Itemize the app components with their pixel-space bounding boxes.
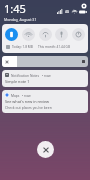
button[interactable]: Settings — [80, 2, 87, 9]
staticText: See what's new in review — [5, 99, 50, 104]
button[interactable]: Maps — [2, 90, 88, 113]
staticText: Simple note 1 — [5, 79, 30, 84]
staticText: Maps — [11, 93, 20, 97]
staticText: 4G — [65, 10, 70, 14]
staticText: Monday, August 31 — [4, 17, 37, 22]
button[interactable]: Brightness — [2, 56, 88, 67]
staticText: • now — [22, 93, 31, 97]
button[interactable]: Quick setting 2 — [39, 28, 52, 41]
button[interactable]: Clear all notifications — [37, 141, 54, 158]
button[interactable]: Quick setting 0 — [5, 28, 18, 41]
staticText: Notification Notes — [11, 73, 40, 77]
button[interactable]: Quick setting 4 — [72, 28, 85, 41]
staticText: • now — [42, 73, 51, 77]
staticText: Today: 1.8 MB — [12, 45, 33, 49]
button[interactable]: Notification Notes — [2, 70, 88, 87]
button[interactable]: Quick setting 3 — [55, 28, 68, 41]
staticText: 1:45 — [4, 1, 26, 16]
button[interactable]: Quick setting 1 — [22, 28, 35, 41]
staticText: Check out places you've been — [5, 105, 52, 110]
staticText: This month: 41.44 GB — [38, 45, 70, 49]
